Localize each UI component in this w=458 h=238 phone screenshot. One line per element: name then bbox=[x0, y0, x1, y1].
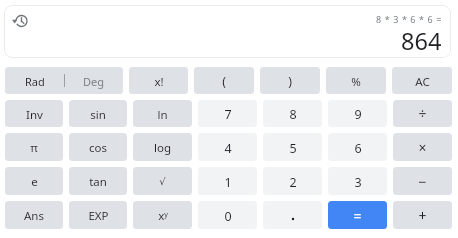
button[interactable]: 4 bbox=[198, 133, 257, 161]
staticText: 864 bbox=[401, 25, 442, 57]
staticText: Ans bbox=[24, 208, 44, 224]
button[interactable]: tan bbox=[69, 167, 127, 195]
staticText: ln bbox=[157, 107, 168, 123]
button[interactable]: = bbox=[328, 201, 387, 229]
staticText: 3 bbox=[354, 174, 362, 191]
button[interactable]: Deg bbox=[64, 67, 123, 94]
staticText: = bbox=[353, 206, 362, 225]
button[interactable]: History bbox=[12, 12, 30, 30]
staticText: π bbox=[30, 140, 38, 156]
button[interactable]: 6 bbox=[328, 133, 387, 161]
staticText: 6 bbox=[354, 140, 362, 157]
button[interactable]: Decimal point bbox=[263, 201, 322, 229]
staticText: xy bbox=[158, 208, 168, 224]
button[interactable]: 5 bbox=[263, 133, 322, 161]
staticText: 8 bbox=[289, 106, 297, 123]
button[interactable]: × bbox=[393, 133, 452, 161]
staticText: 2 bbox=[289, 174, 297, 191]
staticText: 4 bbox=[224, 140, 232, 157]
button[interactable]: Ans bbox=[5, 201, 63, 229]
button[interactable]: % bbox=[326, 67, 386, 94]
button[interactable]: √ bbox=[133, 167, 192, 195]
button[interactable]: Inv bbox=[5, 100, 63, 127]
button[interactable]: ln bbox=[133, 100, 192, 127]
button[interactable]: − bbox=[393, 167, 452, 195]
staticText: 7 bbox=[224, 106, 232, 123]
button[interactable]: 8 bbox=[263, 100, 322, 127]
button[interactable]: ÷ bbox=[393, 100, 452, 127]
button[interactable]: + bbox=[393, 201, 452, 229]
staticText: × bbox=[418, 138, 427, 157]
button[interactable]: 7 bbox=[198, 100, 257, 127]
button[interactable]: e bbox=[5, 167, 63, 195]
button[interactable]: EXP bbox=[69, 201, 127, 229]
staticText: − bbox=[418, 172, 427, 191]
staticText: √ bbox=[159, 176, 166, 188]
button[interactable]: xy bbox=[133, 201, 192, 229]
staticText: % bbox=[351, 74, 361, 90]
button[interactable]: 2 bbox=[263, 167, 322, 195]
staticText: cos bbox=[89, 140, 107, 156]
staticText: 8 * 3 * 6 * 6 = bbox=[376, 13, 442, 25]
staticText: e bbox=[31, 174, 38, 190]
button[interactable]: 3 bbox=[328, 167, 387, 195]
button[interactable]: π bbox=[5, 133, 63, 161]
staticText: sin bbox=[90, 107, 106, 123]
staticText: 1 bbox=[224, 174, 232, 191]
button[interactable]: ( bbox=[194, 67, 254, 94]
staticText: 9 bbox=[354, 106, 362, 123]
button[interactable]: 9 bbox=[328, 100, 387, 127]
staticText: Deg bbox=[83, 74, 104, 89]
staticText: tan bbox=[89, 174, 107, 190]
staticText: ) bbox=[288, 73, 292, 90]
staticText: x! bbox=[154, 74, 164, 90]
button[interactable]: 1 bbox=[198, 167, 257, 195]
staticText: EXP bbox=[88, 208, 109, 224]
staticText: + bbox=[418, 206, 427, 225]
staticText: 5 bbox=[289, 140, 297, 157]
button[interactable]: 0 bbox=[198, 201, 257, 229]
staticText: ÷ bbox=[418, 104, 427, 123]
staticText: AC bbox=[415, 74, 430, 90]
staticText: Inv bbox=[26, 107, 43, 123]
button[interactable]: AC bbox=[392, 67, 452, 94]
button[interactable]: Rad bbox=[5, 67, 64, 94]
button[interactable]: cos bbox=[69, 133, 127, 161]
staticText: Rad bbox=[25, 74, 45, 89]
staticText: log bbox=[154, 140, 171, 156]
button[interactable]: x! bbox=[129, 67, 188, 94]
button[interactable]: ) bbox=[260, 67, 320, 94]
staticText: 0 bbox=[224, 208, 232, 225]
staticText: ( bbox=[222, 73, 226, 90]
button[interactable]: log bbox=[133, 133, 192, 161]
button[interactable]: sin bbox=[69, 100, 127, 127]
